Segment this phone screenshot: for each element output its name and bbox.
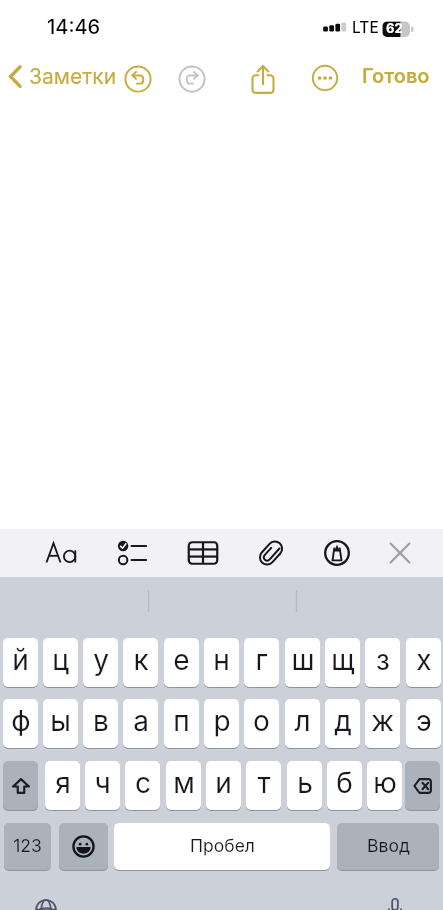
- button[interactable]: Backspace: [405, 761, 440, 810]
- button[interactable]: Attach: [249, 529, 293, 577]
- staticText: щ: [331, 643, 355, 677]
- staticText: а: [133, 704, 149, 738]
- button[interactable]: д: [325, 699, 360, 748]
- staticText: 14:46: [47, 15, 101, 39]
- button[interactable]: а: [123, 699, 158, 748]
- button[interactable]: Hide keyboard: [378, 529, 422, 577]
- button[interactable]: з: [365, 638, 400, 687]
- staticText: и: [215, 766, 232, 800]
- button[interactable]: Checklist: [110, 529, 154, 577]
- staticText: Пробел: [190, 835, 255, 856]
- button[interactable]: ь: [287, 761, 322, 810]
- button[interactable]: Share: [246, 61, 280, 95]
- button[interactable]: о: [244, 699, 279, 748]
- button[interactable]: Change language: [32, 897, 60, 910]
- staticText: э: [416, 704, 432, 738]
- staticText: й: [12, 643, 29, 677]
- button[interactable]: ж: [365, 699, 400, 748]
- staticText: п: [173, 704, 190, 738]
- staticText: с: [135, 766, 151, 800]
- button[interactable]: й: [3, 638, 38, 687]
- button[interactable]: Text format: [40, 529, 84, 577]
- button[interactable]: с: [125, 761, 160, 810]
- button[interactable]: щ: [325, 638, 360, 687]
- button[interactable]: ч: [85, 761, 120, 810]
- staticText: з: [376, 643, 390, 677]
- button[interactable]: э: [406, 699, 441, 748]
- staticText: б: [336, 766, 353, 800]
- button[interactable]: и: [206, 761, 241, 810]
- button[interactable]: н: [204, 638, 239, 687]
- staticText: 123: [13, 835, 42, 856]
- button[interactable]: Ввод: [337, 823, 439, 870]
- button[interactable]: ы: [43, 699, 78, 748]
- button[interactable]: л: [285, 699, 320, 748]
- staticText: LTE: [352, 18, 379, 37]
- staticText: к: [133, 643, 149, 677]
- button[interactable]: х: [406, 638, 441, 687]
- button[interactable]: ю: [367, 761, 402, 810]
- button[interactable]: Shift: [3, 761, 38, 810]
- staticText: л: [294, 704, 311, 738]
- button[interactable]: я: [45, 761, 80, 810]
- staticText: 62: [386, 20, 403, 36]
- button[interactable]: е: [164, 638, 199, 687]
- button[interactable]: Emoji: [59, 823, 108, 870]
- button[interactable]: Готово: [362, 64, 438, 92]
- staticText: х: [416, 643, 432, 677]
- staticText: у: [93, 643, 109, 677]
- staticText: ф: [11, 704, 31, 738]
- staticText: ю: [373, 766, 397, 800]
- button[interactable]: м: [166, 761, 201, 810]
- staticText: о: [253, 704, 270, 738]
- button[interactable]: Заметки: [4, 60, 120, 96]
- staticText: е: [173, 643, 190, 677]
- button[interactable]: п: [164, 699, 199, 748]
- button[interactable]: б: [327, 761, 362, 810]
- staticText: г: [255, 643, 268, 677]
- staticText: я: [55, 766, 71, 800]
- button[interactable]: у: [83, 638, 118, 687]
- staticText: р: [213, 704, 231, 738]
- staticText: ч: [94, 766, 111, 800]
- button[interactable]: 123: [4, 823, 51, 870]
- staticText: Готово: [362, 64, 430, 88]
- button[interactable]: в: [83, 699, 118, 748]
- staticText: Ввод: [367, 835, 410, 856]
- staticText: ш: [291, 643, 315, 677]
- staticText: в: [93, 704, 109, 738]
- button[interactable]: т: [246, 761, 281, 810]
- button[interactable]: ц: [43, 638, 78, 687]
- button[interactable]: Undo: [121, 62, 155, 96]
- staticText: ц: [52, 643, 69, 677]
- button[interactable]: More: [309, 62, 341, 94]
- button[interactable]: Table: [181, 529, 225, 577]
- staticText: ь: [297, 766, 313, 800]
- staticText: н: [213, 643, 230, 677]
- staticText: ы: [50, 704, 71, 738]
- button[interactable]: Dictation: [381, 895, 409, 910]
- staticText: т: [257, 766, 271, 800]
- button[interactable]: ш: [285, 638, 320, 687]
- button[interactable]: Пробел: [114, 823, 330, 870]
- button[interactable]: р: [204, 699, 239, 748]
- button[interactable]: г: [244, 638, 279, 687]
- button[interactable]: ф: [3, 699, 38, 748]
- button[interactable]: к: [123, 638, 158, 687]
- button[interactable]: Redo: [175, 62, 209, 96]
- staticText: ж: [371, 704, 394, 738]
- staticText: д: [334, 704, 352, 738]
- staticText: м: [173, 766, 195, 800]
- staticText: Заметки: [29, 64, 117, 89]
- button[interactable]: Markup: [315, 529, 359, 577]
